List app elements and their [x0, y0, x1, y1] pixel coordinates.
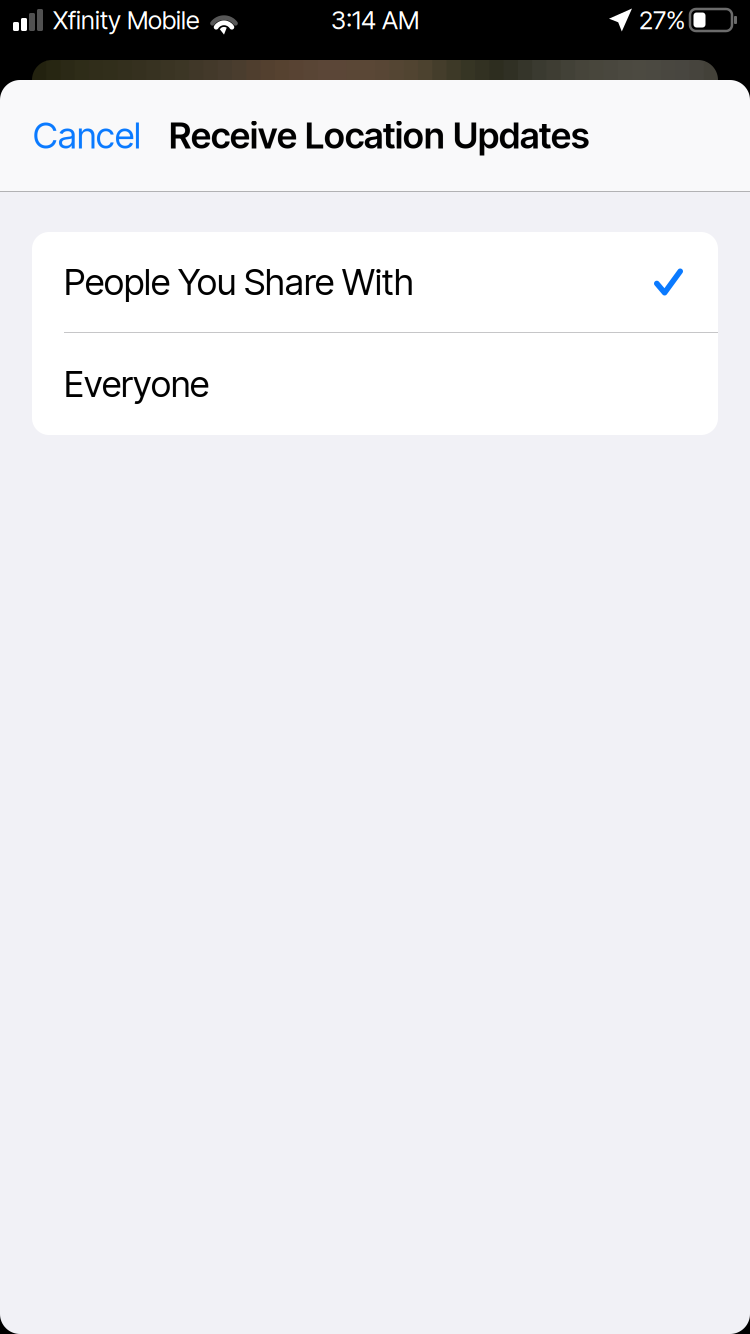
- staticText: People You Share With: [64, 260, 414, 304]
- staticText: Everyone: [64, 362, 209, 406]
- staticText: 3:14 AM: [331, 5, 419, 35]
- button[interactable]: People You Share With: [32, 232, 718, 332]
- staticText: Receive Location Updates: [169, 114, 589, 157]
- staticText: Cancel: [33, 114, 141, 157]
- button[interactable]: Everyone: [32, 333, 718, 435]
- staticText: Xfinity Mobile: [53, 5, 200, 35]
- button[interactable]: Cancel: [0, 80, 169, 191]
- staticText: 27%: [639, 5, 685, 35]
